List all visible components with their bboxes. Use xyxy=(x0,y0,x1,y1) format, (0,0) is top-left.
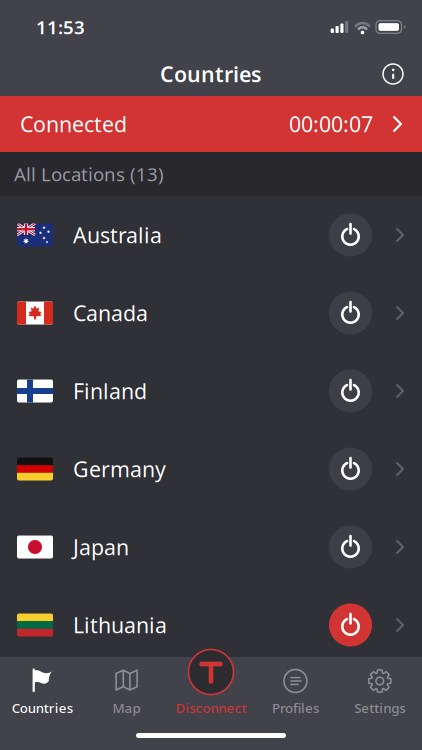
staticText: Germany xyxy=(73,455,166,483)
button[interactable]: Canada xyxy=(0,274,422,352)
staticText: Settings xyxy=(354,699,405,717)
staticText: All Locations (13) xyxy=(14,162,164,186)
button[interactable] xyxy=(329,213,372,256)
staticText: Australia xyxy=(73,221,162,249)
staticText: Disconnect xyxy=(175,699,246,717)
button[interactable]: Countries xyxy=(0,641,84,717)
staticText: Finland xyxy=(73,377,147,405)
button[interactable] xyxy=(329,447,372,490)
button[interactable] xyxy=(329,525,372,568)
staticText: Lithuania xyxy=(73,611,167,639)
staticText: Map xyxy=(113,699,141,717)
button[interactable] xyxy=(329,291,372,334)
button[interactable]: Disconnect xyxy=(169,641,253,717)
button[interactable] xyxy=(329,603,372,646)
staticText: Profiles xyxy=(272,699,319,717)
button[interactable]: Australia xyxy=(0,196,422,274)
button[interactable]: Settings xyxy=(338,641,422,717)
button[interactable]: Lithuania xyxy=(0,586,422,664)
staticText: Connected xyxy=(20,110,127,138)
staticText: Countries xyxy=(12,699,73,717)
staticText: 00:00:07 xyxy=(289,110,373,138)
staticText: Canada xyxy=(73,299,148,327)
button[interactable]: Profiles xyxy=(253,641,338,717)
button[interactable]: Germany xyxy=(0,430,422,508)
staticText: Countries xyxy=(160,60,262,88)
button[interactable] xyxy=(382,63,404,85)
staticText: Japan xyxy=(73,533,129,561)
button[interactable]: Finland xyxy=(0,352,422,430)
button[interactable]: Map xyxy=(84,641,169,717)
button[interactable] xyxy=(329,369,372,412)
button[interactable]: Connected xyxy=(0,96,422,152)
staticText: 11:53 xyxy=(36,15,85,39)
button[interactable]: Japan xyxy=(0,508,422,586)
